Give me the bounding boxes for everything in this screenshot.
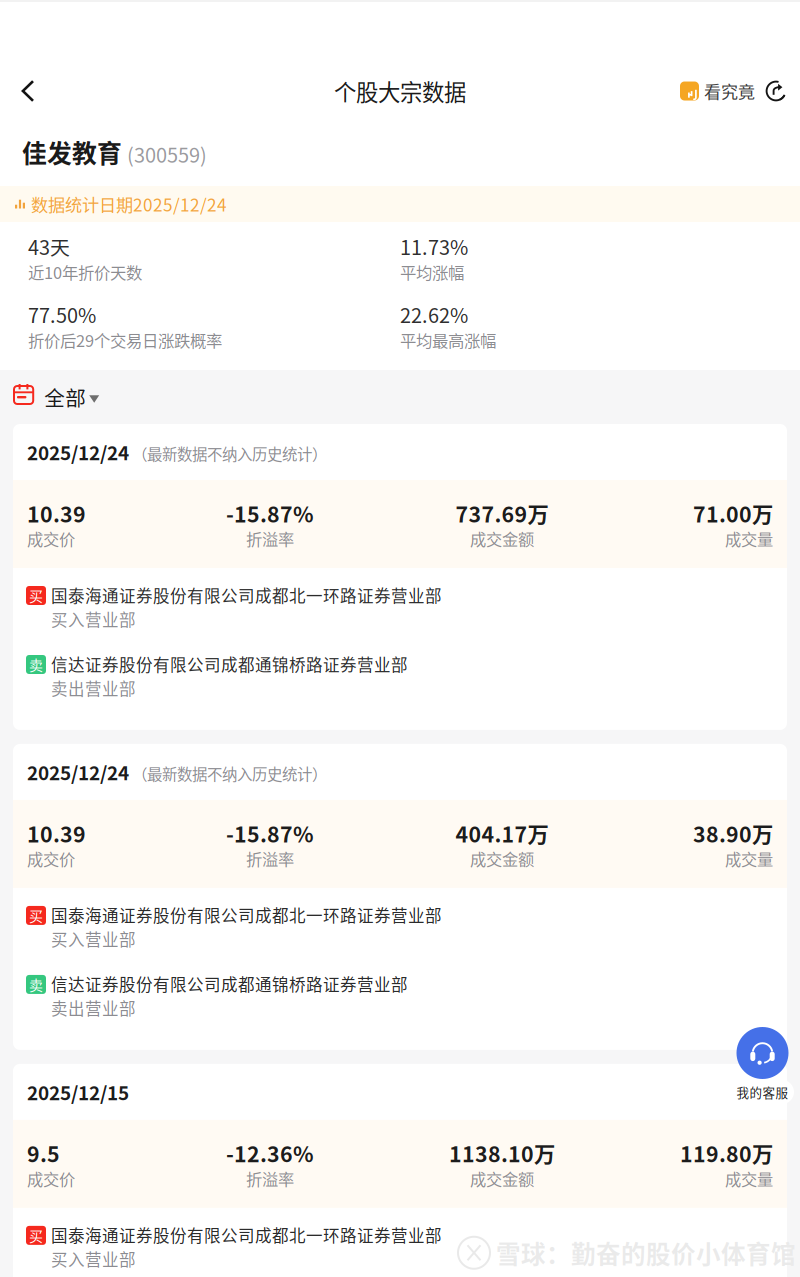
staticText: 卖 [29,974,43,995]
staticText: 成交金额 [470,527,534,550]
staticText: 卖 [29,654,43,675]
staticText: (300559) [127,140,207,169]
staticText: 数据统计日期2025/12/24 [31,191,227,216]
button[interactable]: 全部 [0,370,800,424]
staticText: -15.87% [226,818,314,849]
staticText: 2025/12/24 [27,438,129,466]
staticText: 雪球：勤奋的股价小体育馆 [496,1235,796,1270]
staticText: 77.50% [28,300,96,329]
staticText: -15.87% [226,498,314,529]
staticText: 成交价 [27,847,75,870]
staticText: 国泰海通证券股份有限公司成都北一环路证券营业部 [51,903,442,927]
staticText: 38.90万 [693,818,773,849]
staticText: 个股大宗数据 [334,75,466,107]
staticText: 佳发教育 [22,134,122,170]
button[interactable]: 我的客服 [731,1027,794,1104]
staticText: 成交金额 [470,847,534,870]
staticText: 119.80万 [680,1138,773,1168]
staticText: 1138.10万 [449,1138,555,1168]
staticText: 平均最高涨幅 [400,328,496,352]
button[interactable]: 看究竟 [668,63,761,119]
staticText: 买入营业部 [51,927,136,951]
staticText: 10.39 [27,498,86,529]
staticText: 近10年折价天数 [28,260,142,284]
staticText: 卖出营业部 [51,996,136,1020]
button[interactable]: 返回 [2,63,54,119]
staticText: 买 [29,585,43,606]
staticText: 成交价 [27,1167,75,1190]
staticText: 折溢率 [246,527,294,550]
staticText: （最新数据不纳入历史统计） [132,442,327,465]
staticText: 折溢率 [246,847,294,870]
staticText: 成交量 [725,1167,773,1190]
staticText: 买入营业部 [51,607,136,631]
staticText: 2025/12/15 [27,1078,129,1106]
staticText: 国泰海通证券股份有限公司成都北一环路证券营业部 [51,1223,442,1247]
staticText: 卖出营业部 [51,676,136,700]
staticText: 成交量 [725,847,773,870]
staticText: 折溢率 [246,1167,294,1190]
staticText: 成交量 [725,527,773,550]
staticText: 11.73% [400,232,468,261]
staticText: 平均涨幅 [400,260,464,284]
staticText: 10.39 [27,818,86,849]
staticText: 成交价 [27,527,75,550]
staticText: -12.36% [226,1138,314,1168]
staticText: 看究竟 [704,79,755,103]
staticText: 404.17万 [455,818,548,849]
staticText: 2025/12/24 [27,758,129,786]
staticText: 43天 [28,232,70,261]
staticText: 22.62% [400,300,468,329]
staticText: 71.00万 [693,498,773,529]
staticText: 信达证券股份有限公司成都通锦桥路证券营业部 [51,652,408,676]
staticText: 折价后29个交易日涨跌概率 [28,328,222,352]
staticText: 买 [29,905,43,926]
staticText: 737.69万 [455,498,548,529]
staticText: 买入营业部 [51,1247,136,1271]
staticText: 我的客服 [736,1083,788,1101]
staticText: 买 [29,1225,43,1245]
staticText: 国泰海通证券股份有限公司成都北一环路证券营业部 [51,583,442,607]
staticText: （最新数据不纳入历史统计） [132,762,327,785]
staticText: 全部 [44,382,86,412]
button[interactable]: 刷新 [761,63,791,119]
staticText: 成交金额 [470,1167,534,1190]
staticText: 9.5 [27,1138,60,1168]
staticText: 信达证券股份有限公司成都通锦桥路证券营业部 [51,972,408,996]
